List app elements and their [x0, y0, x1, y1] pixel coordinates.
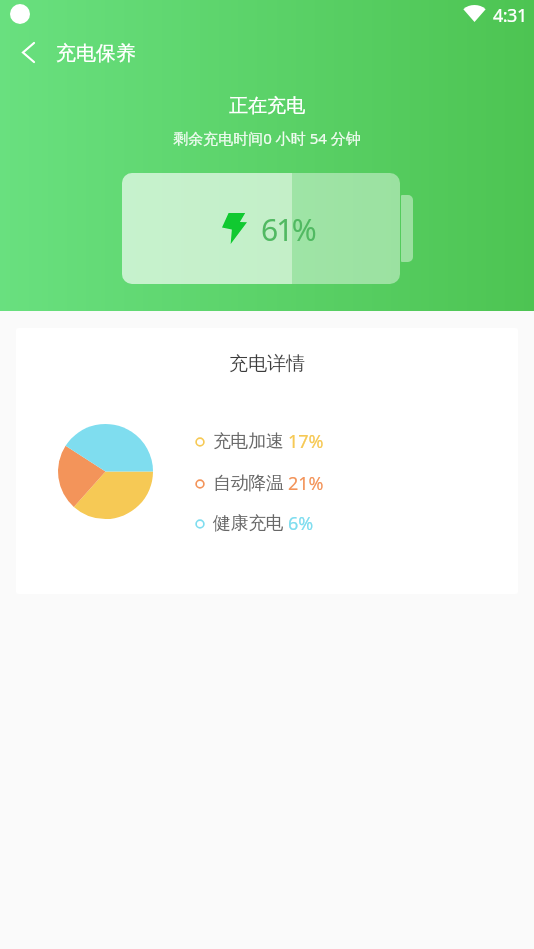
other: Wi-Fi [464, 5, 485, 22]
staticText: 21% [288, 471, 324, 496]
staticText: 剩余充电时间0 小时 54 分钟 [0, 128, 534, 148]
staticText: 61% [261, 209, 315, 250]
staticText: 健康充电 [213, 512, 284, 535]
staticText: 4:31 [493, 3, 527, 28]
staticText: 充电详情 [16, 352, 518, 376]
button[interactable]: 充电加速 [195, 429, 324, 454]
staticText: 正在充电 [0, 94, 534, 118]
staticText: 17% [288, 429, 324, 454]
staticText: 自动降温 [213, 472, 284, 495]
staticText: 6% [288, 511, 314, 536]
button[interactable]: 健康充电 [195, 511, 314, 536]
button[interactable]: 自动降温 [195, 471, 324, 496]
staticText: 充电保养 [56, 41, 136, 66]
staticText: 充电加速 [213, 430, 284, 453]
button[interactable]: Back [6, 30, 50, 74]
